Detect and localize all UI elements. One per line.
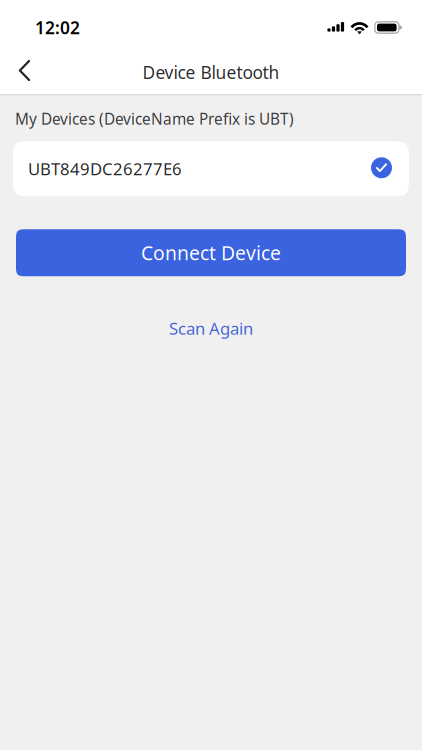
staticText: 12:02 bbox=[35, 16, 80, 39]
staticText: UBT849DC26277E6 bbox=[28, 157, 182, 180]
button[interactable]: Connect Device bbox=[16, 229, 406, 276]
button[interactable]: UBT849DC26277E6 bbox=[13, 141, 409, 196]
staticText: Device Bluetooth bbox=[142, 60, 279, 84]
staticText: Connect Device bbox=[141, 240, 281, 266]
staticText: Scan Again bbox=[169, 317, 253, 340]
button[interactable]: Scan Again bbox=[155, 315, 267, 341]
button[interactable]: Back bbox=[2, 47, 46, 94]
staticText: My Devices (DeviceName Prefix is UBT) bbox=[15, 108, 294, 129]
